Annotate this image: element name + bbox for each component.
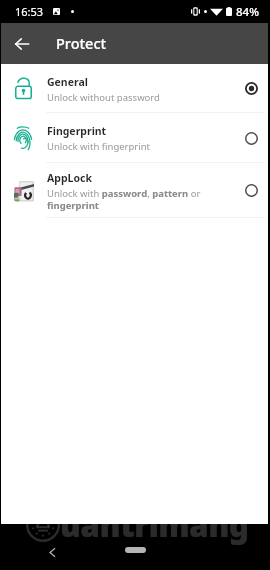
staticText: 16:53: [15, 4, 44, 19]
staticText: Protect: [56, 33, 107, 53]
staticText: AppLock: [47, 171, 92, 185]
button[interactable]: Back: [0, 23, 44, 64]
button[interactable]: Select option: [241, 128, 261, 148]
button[interactable]: Select option: [241, 180, 261, 200]
staticText: Fingerprint: [47, 124, 107, 138]
button[interactable]: Fingerprint: [0, 113, 270, 162]
staticText: uantrimang: [60, 504, 249, 546]
button[interactable]: Select option: [241, 78, 261, 98]
staticText: 84%: [236, 4, 259, 20]
staticText: Unlock with password, pattern or fingerp…: [47, 187, 201, 212]
staticText: Unlock with fingerprint: [47, 140, 151, 153]
staticText: General: [47, 75, 88, 89]
button[interactable]: Back: [42, 542, 62, 562]
staticText: Unlock without password: [47, 91, 160, 104]
button[interactable]: Home: [115, 542, 155, 558]
button[interactable]: AppLock: [0, 163, 270, 217]
button[interactable]: General: [0, 64, 270, 112]
